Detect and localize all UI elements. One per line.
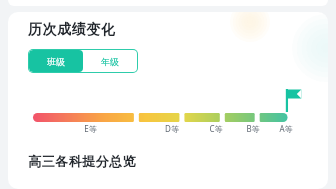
staticText: A等 xyxy=(279,123,293,134)
staticText: 高三各科提分总览 xyxy=(28,153,136,169)
button[interactable]: 班级 xyxy=(29,50,83,72)
button[interactable]: 年级 xyxy=(83,50,137,72)
button[interactable]: D等 xyxy=(148,123,195,134)
other: 当前等级 A等 xyxy=(33,87,302,135)
staticText: 班级 xyxy=(47,56,65,67)
staticText: 历次成绩变化 xyxy=(28,21,116,39)
staticText: E等 xyxy=(84,123,97,134)
staticText: D等 xyxy=(165,123,179,134)
staticText: 年级 xyxy=(101,56,119,67)
button[interactable]: A等 xyxy=(270,123,302,134)
staticText: C等 xyxy=(209,123,223,134)
button[interactable]: E等 xyxy=(33,123,148,134)
button[interactable]: C等 xyxy=(195,123,236,134)
button[interactable]: B等 xyxy=(236,123,270,134)
staticText: B等 xyxy=(246,123,260,134)
